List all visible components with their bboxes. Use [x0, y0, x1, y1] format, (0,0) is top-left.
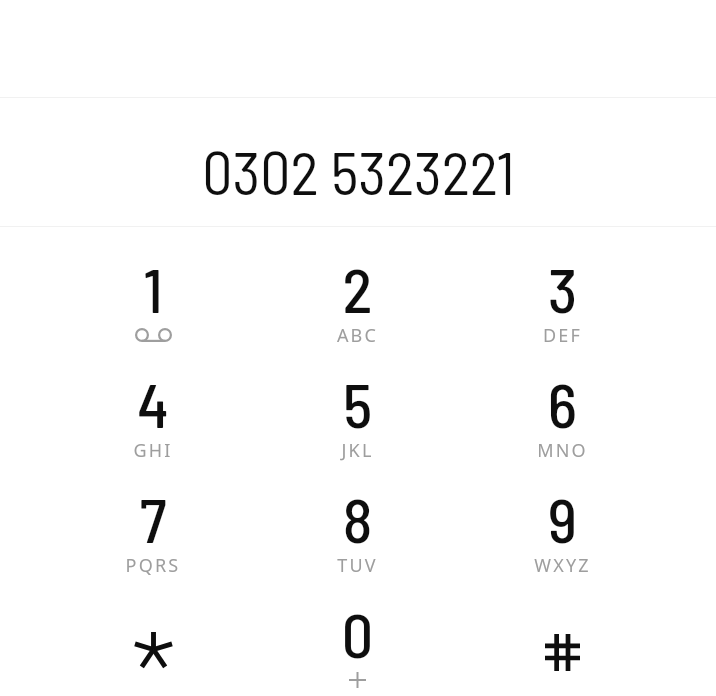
staticText: 2	[255, 251, 460, 325]
button[interactable]: 1	[51, 227, 255, 342]
staticText: JKL	[255, 438, 460, 463]
staticText: 0302 5323221	[202, 135, 515, 207]
staticText: DEF	[460, 323, 665, 348]
other: Star	[135, 632, 172, 667]
staticText: 8	[255, 481, 460, 555]
button[interactable]: Pound	[460, 572, 665, 687]
other: Voicemail	[135, 328, 172, 342]
other: Pound	[545, 634, 580, 671]
staticText: 7	[51, 481, 255, 555]
staticText: WXYZ	[460, 553, 665, 578]
staticText: 1	[51, 251, 255, 325]
button[interactable]: 6	[460, 342, 665, 457]
staticText: PQRS	[51, 553, 255, 578]
staticText: TUV	[255, 553, 460, 578]
staticText: 9	[460, 481, 665, 555]
staticText: ABC	[255, 323, 460, 348]
button[interactable]: 8	[255, 457, 460, 572]
button[interactable]: 7	[51, 457, 255, 572]
staticText: GHI	[51, 438, 255, 463]
button[interactable]: 2	[255, 227, 460, 342]
staticText: 4	[51, 366, 255, 440]
button[interactable]: 4	[51, 342, 255, 457]
button[interactable]: Star	[51, 572, 255, 687]
staticText: MNO	[460, 438, 665, 463]
button[interactable]: 3	[460, 227, 665, 342]
button[interactable]: 5	[255, 342, 460, 457]
button[interactable]: 9	[460, 457, 665, 572]
staticText: 5	[255, 366, 460, 440]
button[interactable]: 0	[255, 572, 460, 687]
staticText: 6	[460, 366, 665, 440]
staticText: 3	[460, 251, 665, 325]
other: Plus	[349, 672, 366, 688]
staticText: 0	[255, 596, 460, 670]
